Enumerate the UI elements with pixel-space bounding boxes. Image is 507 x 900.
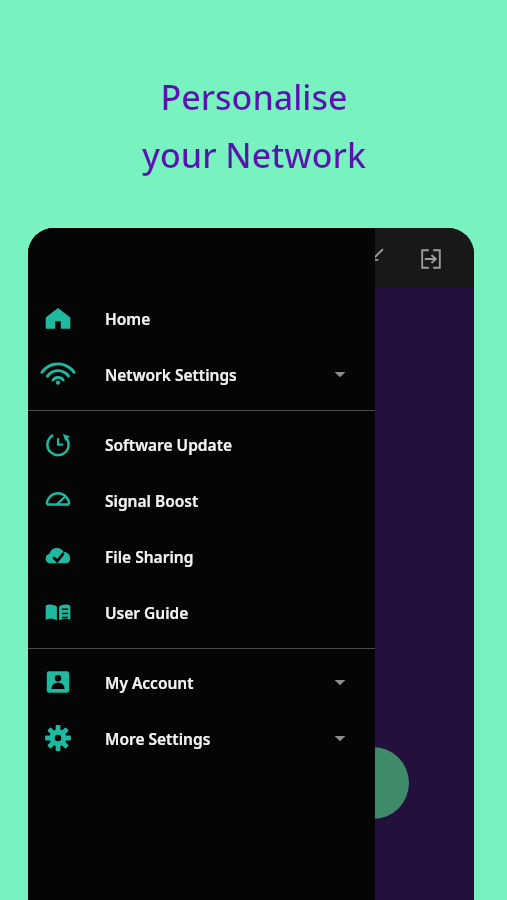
staticText: Network Settings [105,364,237,385]
staticText: My Account [105,672,194,693]
button[interactable]: User Guide [28,584,375,640]
staticText: User Guide [105,602,189,623]
button[interactable]: More Settings [28,710,375,766]
button[interactable]: Signal Boost [28,472,375,528]
button[interactable]: My Account [28,654,375,710]
button[interactable]: Collapse [362,248,384,270]
button[interactable]: Network Settings [28,346,375,402]
staticText: your Network [142,132,366,178]
button[interactable]: Home [28,290,375,346]
button[interactable]: Sign in [420,248,442,270]
staticText: File Sharing [105,546,194,567]
staticText: Home [105,308,151,329]
button[interactable]: File Sharing [28,528,375,584]
staticText: Signal Boost [105,490,199,511]
staticText: Software Update [105,434,232,455]
staticText: More Settings [105,728,211,749]
staticText: Personalise [160,74,348,120]
button[interactable]: Software Update [28,416,375,472]
